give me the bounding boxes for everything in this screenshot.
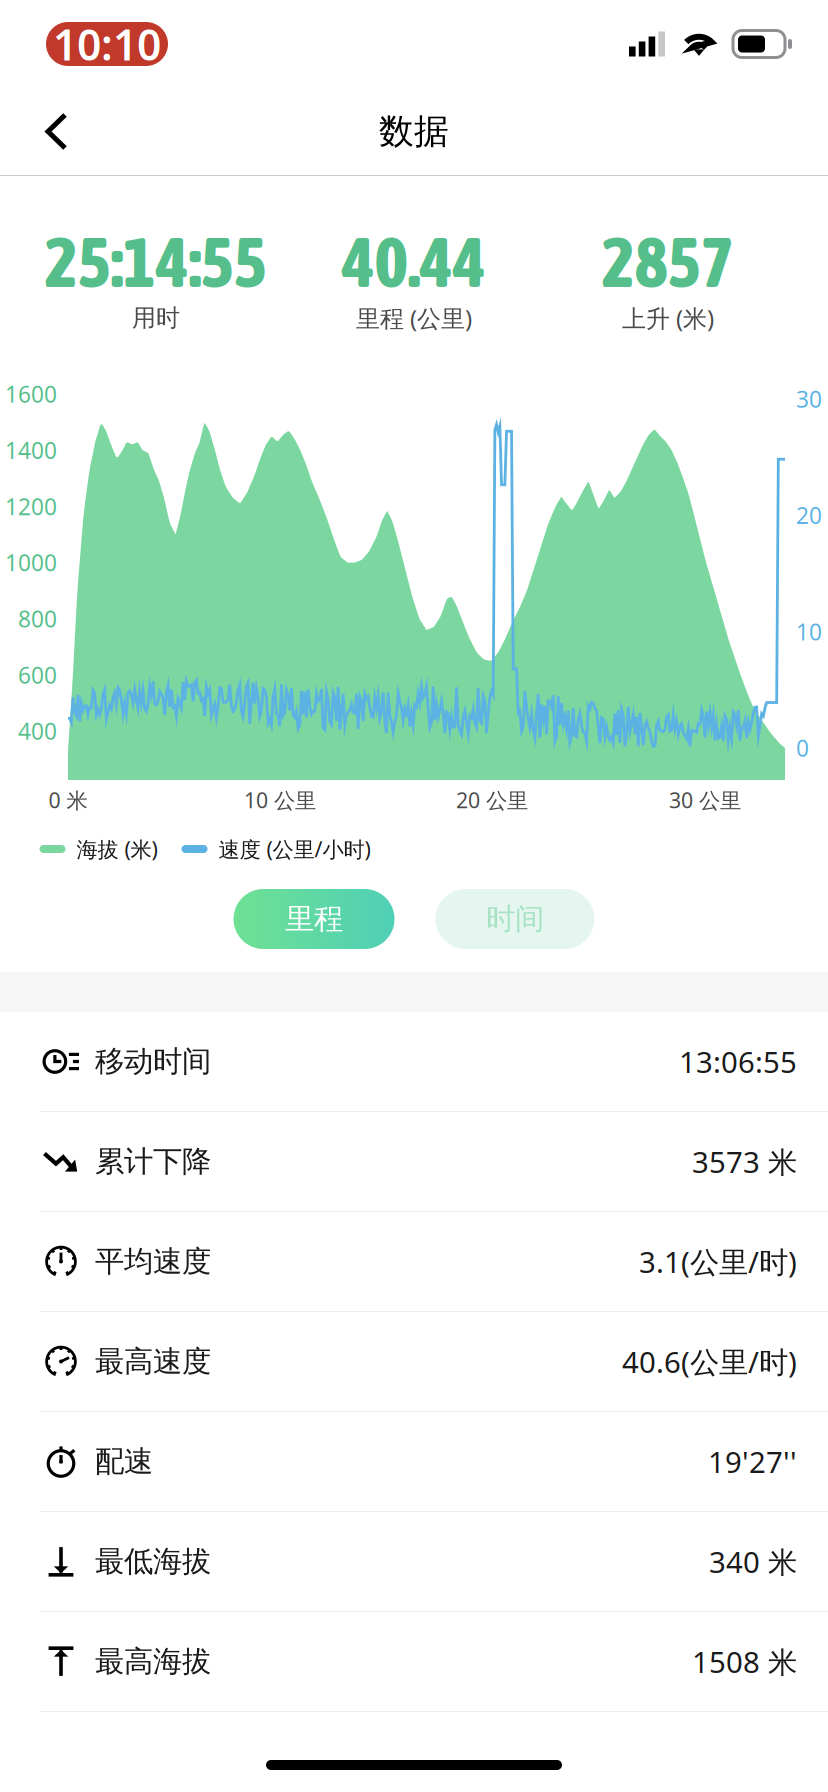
staticText: 上升 (米): [622, 302, 714, 334]
button[interactable]: 累计下降: [0, 1112, 828, 1212]
staticText: 速度 (公里/小时): [218, 835, 370, 863]
staticText: 40.6(公里/时): [622, 1342, 797, 1381]
staticText: 海拔 (米): [76, 835, 157, 863]
staticText: 1000: [5, 547, 57, 578]
button[interactable]: 移动时间: [0, 1012, 828, 1112]
button[interactable]: 最高海拔: [0, 1612, 828, 1712]
button[interactable]: 最低海拔: [0, 1512, 828, 1612]
staticText: 1200: [5, 491, 57, 521]
staticText: 1400: [5, 435, 57, 465]
staticText: 数据: [379, 110, 449, 153]
button[interactable]: Back: [0, 88, 100, 175]
staticText: 20: [796, 500, 822, 530]
staticText: 10:10: [53, 16, 161, 72]
staticText: 累计下降: [95, 1143, 211, 1179]
staticText: 10 公里: [244, 786, 316, 814]
button[interactable]: 最高速度: [0, 1312, 828, 1412]
staticText: 40.44: [342, 222, 486, 302]
staticText: 13:06:55: [679, 1042, 797, 1081]
button[interactable]: 平均速度: [0, 1212, 828, 1312]
staticText: 最低海拔: [95, 1543, 211, 1579]
staticText: 800: [18, 604, 57, 634]
button[interactable]: 时间: [435, 889, 594, 949]
staticText: 里程: [285, 901, 343, 937]
staticText: 最高速度: [95, 1343, 211, 1379]
staticText: 20 公里: [456, 786, 528, 814]
staticText: 400: [18, 716, 57, 746]
staticText: 10: [796, 617, 822, 647]
staticText: 用时: [132, 303, 180, 333]
staticText: 0: [796, 733, 809, 763]
button[interactable]: 里程: [233, 889, 394, 949]
staticText: 25:14:55: [45, 222, 267, 302]
staticText: 配速: [95, 1443, 153, 1479]
staticText: 3.1(公里/时): [639, 1242, 797, 1281]
staticText: 1508 米: [692, 1642, 797, 1681]
staticText: 3573 米: [692, 1142, 797, 1181]
staticText: 里程 (公里): [356, 302, 472, 334]
staticText: 最高海拔: [95, 1643, 211, 1679]
staticText: 340 米: [709, 1542, 797, 1581]
staticText: 19'27'': [708, 1442, 797, 1481]
staticText: 0 米: [48, 786, 87, 814]
button[interactable]: 配速: [0, 1412, 828, 1512]
staticText: 1600: [5, 379, 57, 409]
staticText: 30 公里: [669, 786, 741, 814]
staticText: 30: [796, 384, 822, 414]
staticText: 2857: [602, 222, 734, 302]
staticText: 移动时间: [95, 1043, 211, 1079]
staticText: 平均速度: [95, 1243, 211, 1279]
staticText: 时间: [486, 901, 544, 937]
staticText: 600: [18, 660, 57, 690]
